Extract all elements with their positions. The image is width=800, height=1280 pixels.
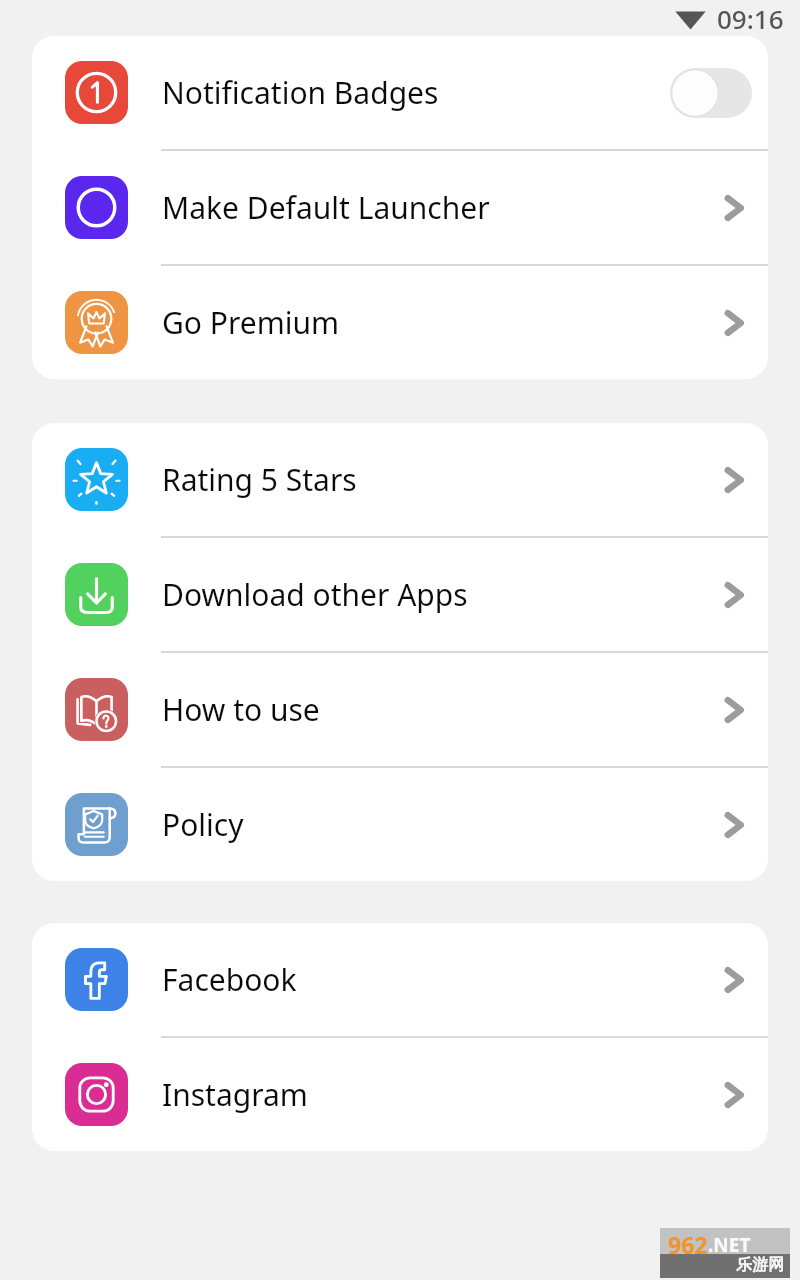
button[interactable]: Go Premium	[32, 266, 768, 379]
other: Instagram	[710, 1072, 756, 1118]
staticText: 962	[668, 1229, 708, 1260]
staticText: .NET	[708, 1232, 751, 1258]
button[interactable]: Download other Apps	[32, 538, 768, 653]
button[interactable]: Facebook	[32, 923, 768, 1038]
other: How to use	[710, 687, 756, 733]
button[interactable]: Make Default Launcher	[32, 151, 768, 266]
staticText: Policy	[162, 804, 710, 845]
button[interactable]: Policy	[32, 768, 768, 881]
staticText: Notification Badges	[162, 72, 670, 113]
staticText: Instagram	[162, 1074, 710, 1115]
button[interactable]: Notification Badges	[32, 36, 768, 151]
button[interactable]: How to use	[32, 653, 768, 768]
other: Make Default Launcher	[710, 185, 756, 231]
other: Toggle Notification Badges	[670, 68, 752, 118]
other: Rating 5 Stars	[710, 457, 756, 503]
other: Download other Apps	[710, 572, 756, 618]
button[interactable]: Instagram	[32, 1038, 768, 1151]
staticText: Rating 5 Stars	[162, 459, 710, 500]
staticText: How to use	[162, 689, 710, 730]
staticText: 乐游网	[736, 1255, 784, 1275]
staticText: Download other Apps	[162, 574, 710, 615]
other: Go Premium	[710, 300, 756, 346]
staticText: 09:16	[717, 1, 784, 36]
other: Policy	[710, 802, 756, 848]
button[interactable]: Rating 5 Stars	[32, 423, 768, 538]
staticText: Go Premium	[162, 302, 710, 343]
staticText: Make Default Launcher	[162, 187, 710, 228]
staticText: Facebook	[162, 959, 710, 1000]
other: Facebook	[710, 957, 756, 1003]
